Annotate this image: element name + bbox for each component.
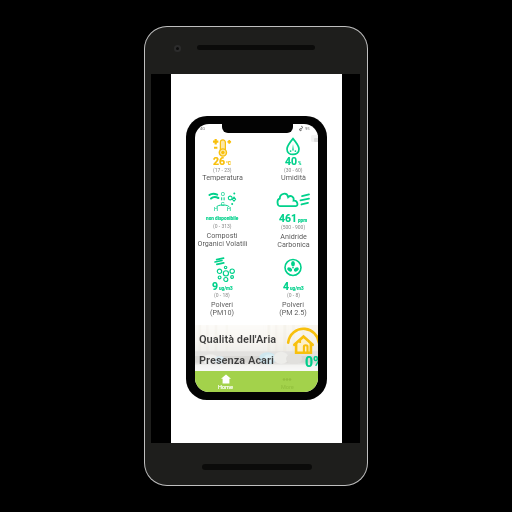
staticText: % — [298, 161, 302, 166]
staticText: Temperatura — [202, 173, 243, 181]
staticText: (PM 2.5) — [279, 308, 307, 316]
staticText: H — [227, 206, 231, 212]
button[interactable]: 40 — [262, 137, 318, 181]
staticText: 95 — [305, 126, 310, 131]
staticText: Anidride — [280, 232, 307, 240]
staticText: 4 — [283, 280, 290, 292]
staticText: ppm — [298, 218, 308, 223]
staticText: More — [281, 384, 294, 390]
staticText: Polveri — [211, 300, 233, 308]
staticText: (0 - 313) — [213, 223, 232, 229]
staticText: Organici Volatili — [197, 239, 248, 247]
staticText: (30 - 60) — [284, 167, 303, 173]
staticText: O — [221, 191, 225, 197]
staticText: Composti — [206, 231, 238, 239]
staticText: ug/m3 — [290, 286, 304, 291]
staticText: (0 - 18) — [214, 292, 230, 298]
staticText: Home — [218, 384, 233, 390]
staticText: H — [214, 206, 218, 212]
staticText: 0% — [305, 354, 318, 370]
staticText: Polveri — [282, 300, 304, 308]
button[interactable]: Presenza Acari — [199, 354, 274, 367]
staticText: (500 - 900) — [281, 224, 306, 230]
button[interactable]: 461 — [262, 191, 318, 248]
staticText: non disponibile — [206, 216, 239, 222]
button[interactable]: Qualità dell'Aria — [199, 333, 277, 346]
staticText: 9 — [212, 280, 219, 292]
button[interactable]: 9 — [195, 255, 253, 316]
button[interactable]: O — [195, 191, 253, 247]
staticText: Umidità — [281, 173, 306, 181]
staticText: ug/m3 — [219, 286, 233, 291]
staticText: 26 — [213, 155, 226, 167]
staticText: Carbonica — [277, 240, 310, 248]
button[interactable]: More — [256, 371, 318, 392]
staticText: °C — [226, 161, 231, 166]
staticText: 461 — [279, 212, 298, 224]
staticText: (17 - 23) — [213, 167, 232, 173]
button[interactable]: 26 — [195, 137, 253, 181]
staticText: (PM10) — [210, 308, 234, 316]
button[interactable]: 4 — [262, 255, 318, 316]
staticText: C — [221, 201, 225, 207]
staticText: (0 - 8) — [287, 292, 300, 298]
staticText: 40 — [285, 155, 298, 167]
staticText: 4G — [200, 126, 206, 131]
button[interactable]: Home — [195, 371, 256, 392]
